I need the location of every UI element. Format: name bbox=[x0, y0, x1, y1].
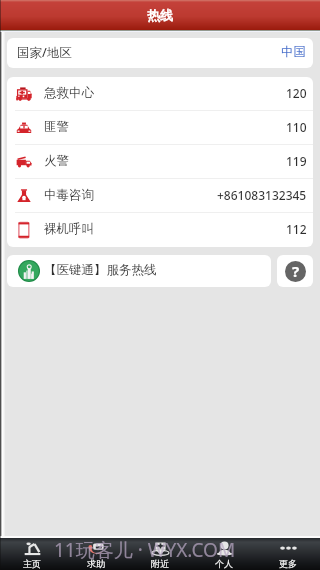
staticText: 119 bbox=[286, 153, 307, 169]
staticText: 火警 bbox=[44, 153, 69, 169]
staticText: 附近 bbox=[151, 558, 169, 569]
button[interactable]: 主页 bbox=[0, 538, 64, 570]
button[interactable]: 急救中心 bbox=[7, 77, 313, 111]
button[interactable]: 中毒咨询 bbox=[7, 179, 313, 213]
staticText: 11玩客儿 · WYX.COM bbox=[54, 537, 236, 563]
staticText: 求助 bbox=[87, 558, 105, 569]
button[interactable]: 匪警 bbox=[7, 111, 313, 145]
button[interactable]: 更多 bbox=[256, 538, 320, 570]
staticText: 112 bbox=[286, 221, 307, 237]
staticText: 热线 bbox=[147, 7, 173, 23]
button[interactable]: 【医键通】服务热线 bbox=[7, 255, 271, 287]
button[interactable]: Help bbox=[277, 255, 313, 287]
staticText: 中国 bbox=[281, 44, 306, 60]
staticText: ? bbox=[292, 261, 300, 281]
staticText: 匪警 bbox=[44, 119, 69, 135]
button[interactable]: 火警 bbox=[7, 145, 313, 179]
staticText: 急救中心 bbox=[44, 85, 94, 101]
staticText: 中毒咨询 bbox=[44, 187, 94, 203]
staticText: 110 bbox=[286, 119, 307, 135]
staticText: 个人 bbox=[215, 558, 233, 569]
button[interactable]: 附近 bbox=[128, 538, 192, 570]
staticText: 国家/地区 bbox=[17, 44, 72, 61]
staticText: +861083132345 bbox=[217, 187, 307, 203]
staticText: 120 bbox=[286, 85, 307, 101]
button[interactable]: 国家/地区 bbox=[7, 38, 313, 68]
button[interactable]: 个人 bbox=[192, 538, 256, 570]
staticText: 主页 bbox=[23, 558, 41, 569]
staticText: 裸机呼叫 bbox=[44, 221, 94, 237]
staticText: 【医键通】服务热线 bbox=[44, 262, 157, 278]
button[interactable]: 求助 bbox=[64, 538, 128, 570]
button[interactable]: 裸机呼叫 bbox=[7, 213, 313, 247]
staticText: 更多 bbox=[279, 558, 297, 569]
